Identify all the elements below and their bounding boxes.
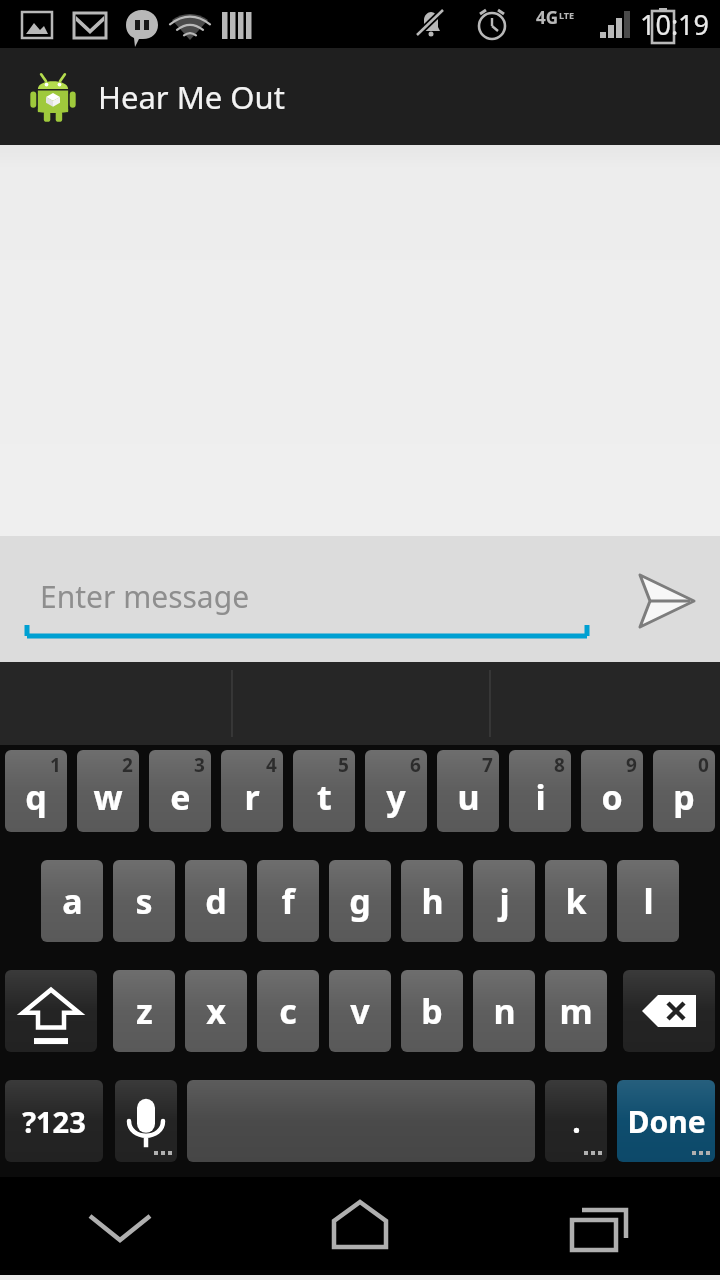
button[interactable]: Space bbox=[187, 1080, 535, 1162]
button[interactable]: a bbox=[41, 860, 103, 942]
button[interactable]: n bbox=[473, 970, 535, 1052]
staticText: e bbox=[170, 774, 191, 820]
button[interactable]: d bbox=[185, 860, 247, 942]
button[interactable]: Shift bbox=[5, 970, 97, 1052]
staticText: LTE bbox=[559, 9, 575, 21]
staticText: x bbox=[206, 988, 226, 1034]
staticText: q bbox=[25, 774, 47, 820]
staticText: c bbox=[279, 988, 297, 1034]
staticText: Done bbox=[627, 1101, 706, 1142]
button[interactable]: x bbox=[185, 970, 247, 1052]
button[interactable]: c bbox=[257, 970, 319, 1052]
staticText: ?123 bbox=[22, 1102, 86, 1141]
staticText: s bbox=[135, 878, 153, 924]
staticText: 0 bbox=[698, 752, 709, 778]
staticText: h bbox=[421, 878, 444, 924]
staticText: . bbox=[572, 1101, 581, 1142]
staticText: l bbox=[643, 878, 654, 924]
staticText: 5 bbox=[338, 752, 349, 778]
button[interactable]: j bbox=[473, 860, 535, 942]
staticText: n bbox=[493, 988, 516, 1034]
button[interactable]: 6 bbox=[365, 750, 427, 832]
staticText: 4 bbox=[266, 752, 277, 778]
staticText: m bbox=[559, 988, 593, 1034]
staticText: 4G bbox=[536, 6, 559, 29]
button[interactable]: . bbox=[545, 1080, 607, 1162]
staticText: 2 bbox=[122, 752, 133, 778]
button[interactable]: Home bbox=[240, 1177, 480, 1275]
staticText: t bbox=[317, 774, 332, 820]
button[interactable]: 5 bbox=[293, 750, 355, 832]
button[interactable]: 0 bbox=[653, 750, 715, 832]
staticText: g bbox=[349, 878, 371, 924]
staticText: 6 bbox=[410, 752, 421, 778]
staticText: f bbox=[281, 878, 295, 924]
staticText: p bbox=[673, 774, 695, 820]
button[interactable]: v bbox=[329, 970, 391, 1052]
button[interactable]: ?123 bbox=[5, 1080, 103, 1162]
staticText: u bbox=[457, 774, 480, 820]
staticText: o bbox=[601, 774, 623, 820]
staticText: i bbox=[535, 774, 546, 820]
staticText: 1 bbox=[50, 752, 61, 778]
staticText: 9 bbox=[626, 752, 637, 778]
button[interactable]: h bbox=[401, 860, 463, 942]
button[interactable]: 2 bbox=[77, 750, 139, 832]
staticText: b bbox=[421, 988, 443, 1034]
staticText: Enter message bbox=[40, 576, 250, 617]
button[interactable]: Voice input bbox=[115, 1080, 177, 1162]
button[interactable]: Backspace bbox=[623, 970, 715, 1052]
staticText: v bbox=[350, 988, 370, 1034]
staticText: w bbox=[93, 774, 123, 820]
button[interactable]: Hear Me Out bbox=[0, 48, 720, 145]
button[interactable]: g bbox=[329, 860, 391, 942]
staticText: k bbox=[565, 878, 587, 924]
button[interactable]: Enter message bbox=[24, 558, 590, 642]
button[interactable]: 7 bbox=[437, 750, 499, 832]
button[interactable]: b bbox=[401, 970, 463, 1052]
button[interactable]: s bbox=[113, 860, 175, 942]
button[interactable]: 3 bbox=[149, 750, 211, 832]
staticText: Hear Me Out bbox=[98, 76, 285, 118]
staticText: j bbox=[499, 878, 510, 924]
staticText: 8 bbox=[554, 752, 565, 778]
button[interactable]: Done bbox=[617, 1080, 715, 1162]
button[interactable]: Send message bbox=[620, 561, 700, 641]
staticText: r bbox=[244, 774, 260, 820]
button[interactable]: f bbox=[257, 860, 319, 942]
button[interactable]: l bbox=[617, 860, 679, 942]
button[interactable]: 8 bbox=[509, 750, 571, 832]
staticText: 10:19 bbox=[640, 6, 710, 43]
button[interactable]: k bbox=[545, 860, 607, 942]
staticText: 3 bbox=[194, 752, 205, 778]
staticText: d bbox=[205, 878, 227, 924]
staticText: y bbox=[386, 774, 406, 820]
button[interactable]: m bbox=[545, 970, 607, 1052]
staticText: z bbox=[136, 988, 153, 1034]
button[interactable]: Hide keyboard bbox=[0, 1177, 240, 1275]
staticText: 7 bbox=[482, 752, 493, 778]
button[interactable]: 9 bbox=[581, 750, 643, 832]
button[interactable]: z bbox=[113, 970, 175, 1052]
button[interactable]: 1 bbox=[5, 750, 67, 832]
button[interactable]: 4 bbox=[221, 750, 283, 832]
staticText: a bbox=[62, 878, 83, 924]
button[interactable]: Recent apps bbox=[480, 1177, 720, 1275]
